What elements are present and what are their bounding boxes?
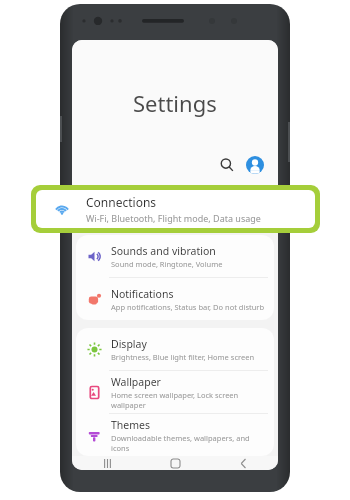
button[interactable]: Wallpaper bbox=[76, 371, 274, 413]
button[interactable]: Recent apps bbox=[94, 456, 120, 470]
staticText: Downloadable themes, wallpapers, and ico… bbox=[111, 433, 266, 453]
button[interactable]: Sounds and vibration bbox=[76, 235, 274, 277]
button[interactable]: Display bbox=[76, 328, 274, 370]
staticText: Settings bbox=[133, 88, 217, 118]
staticText: Wi-Fi, Bluetooth, Flight mode, Data usag… bbox=[86, 212, 261, 224]
staticText: Sound mode, Ringtone, Volume bbox=[111, 259, 223, 269]
button[interactable]: Notifications bbox=[76, 278, 274, 320]
button[interactable]: Search bbox=[216, 154, 238, 176]
button[interactable]: Themes bbox=[76, 414, 274, 456]
staticText: App notifications, Status bar, Do not di… bbox=[111, 302, 265, 312]
staticText: Notifications bbox=[111, 287, 174, 301]
staticText: Home screen wallpaper, Lock screen wallp… bbox=[111, 390, 266, 410]
staticText: Wallpaper bbox=[111, 375, 161, 389]
staticText: Sounds and vibration bbox=[111, 244, 216, 258]
staticText: Themes bbox=[111, 418, 151, 432]
staticText: Display bbox=[111, 337, 147, 351]
staticText: Brightness, Blue light filter, Home scre… bbox=[111, 352, 255, 362]
button[interactable]: Back bbox=[230, 456, 256, 470]
button[interactable]: Account bbox=[246, 156, 264, 174]
button[interactable]: Home bbox=[162, 456, 188, 470]
button[interactable]: Connections bbox=[36, 190, 315, 228]
staticText: Connections bbox=[86, 194, 157, 210]
